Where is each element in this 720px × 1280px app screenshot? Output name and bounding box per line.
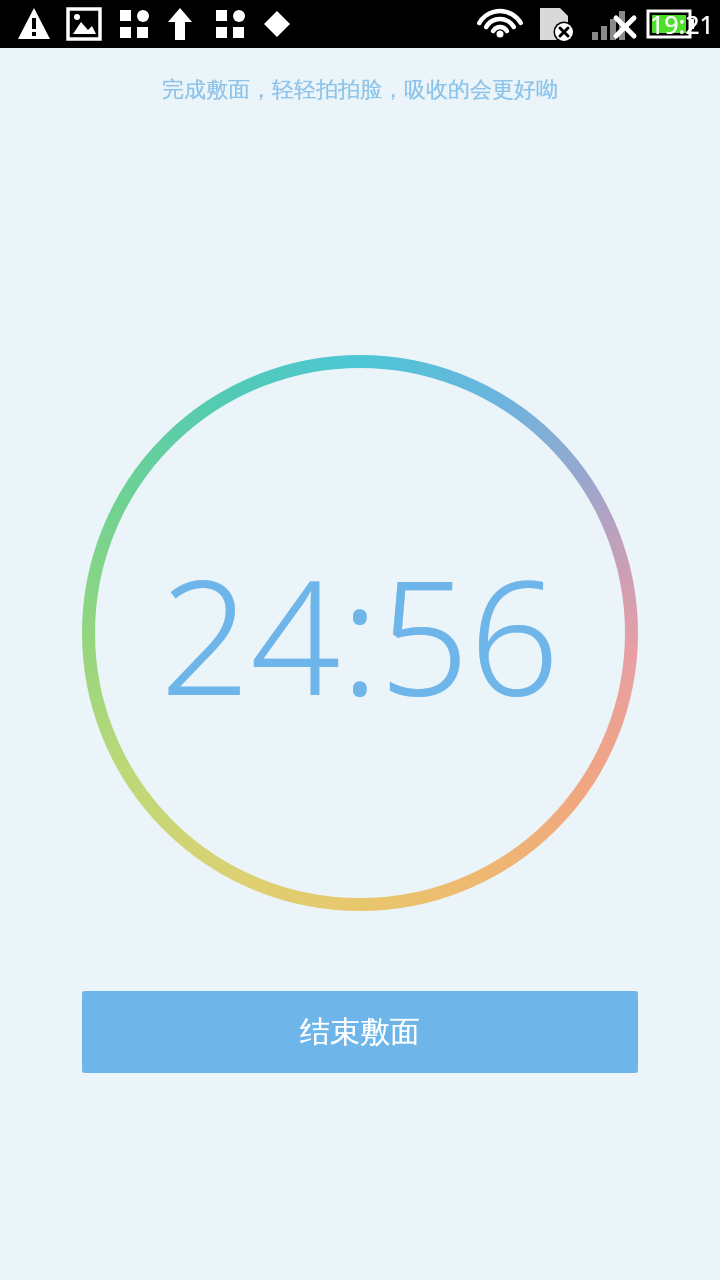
- button[interactable]: 结束敷面: [82, 991, 638, 1073]
- staticText: 19:21: [650, 7, 714, 41]
- staticText: 结束敷面: [300, 1013, 420, 1051]
- staticText: 24:56: [160, 526, 560, 741]
- staticText: 完成敷面，轻轻拍拍脸，吸收的会更好呦: [162, 76, 558, 104]
